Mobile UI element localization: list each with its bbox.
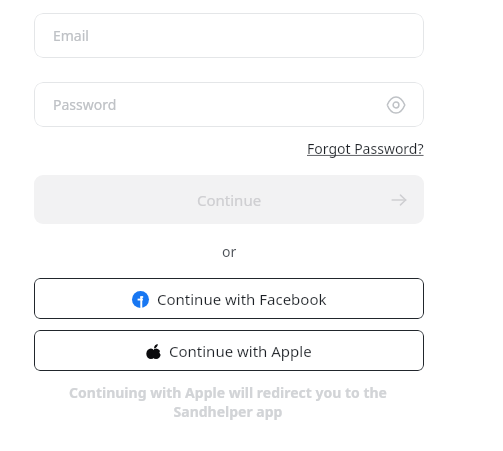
button[interactable]: Email — [34, 13, 424, 58]
button[interactable]: Password — [34, 82, 424, 127]
button[interactable]: Show password — [382, 91, 410, 119]
button[interactable]: Continue with Facebook — [34, 278, 424, 319]
staticText: Forgot Password? — [307, 139, 424, 158]
staticText: or — [222, 242, 237, 261]
staticText: Password — [53, 95, 117, 114]
button[interactable]: Forgot Password? — [307, 139, 424, 158]
button[interactable]: Continue with Apple — [34, 330, 424, 371]
staticText: Continue with Apple — [169, 341, 312, 361]
staticText: Continuing with Apple will redirect you … — [33, 383, 423, 421]
staticText: Continue with Facebook — [157, 289, 327, 309]
staticText: Email — [53, 26, 89, 45]
button[interactable]: Continue — [34, 175, 424, 224]
staticText: Continue — [197, 190, 262, 210]
